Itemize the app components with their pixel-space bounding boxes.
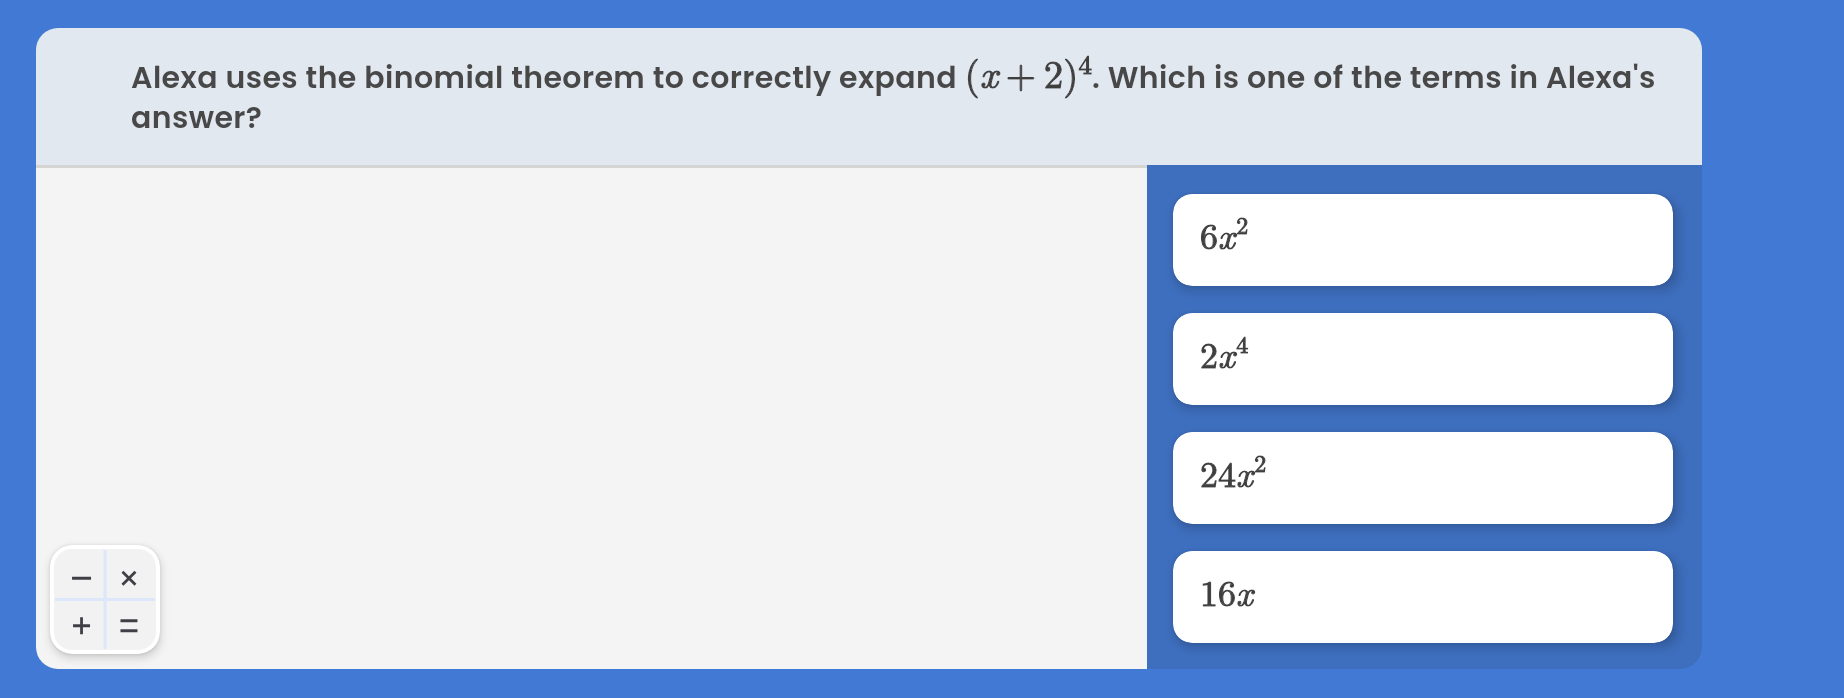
staticText: 24x 2 [1200,445,1267,497]
staticText: 24x 2 [1200,445,1267,497]
staticText: 2x 4 [1200,326,1249,378]
staticText: 16x [1200,565,1253,616]
staticText: 6x 2 [1200,207,1249,259]
button[interactable]: 24x 2 [1173,432,1673,524]
staticText: 6x 2 [1200,207,1249,259]
staticText: Alexa uses the binomial theorem to corre… [131,44,1686,139]
button[interactable]: 16x [1173,551,1673,643]
staticText: 2x 4 [1200,326,1249,378]
staticText: 16x [1200,565,1253,616]
button[interactable]: 2x 4 [1173,313,1673,405]
staticText: Alexa uses the binomial theorem to corre… [131,44,1686,139]
button[interactable]: 6x 2 [1173,194,1673,286]
button[interactable]: Math keyboard [50,545,160,654]
